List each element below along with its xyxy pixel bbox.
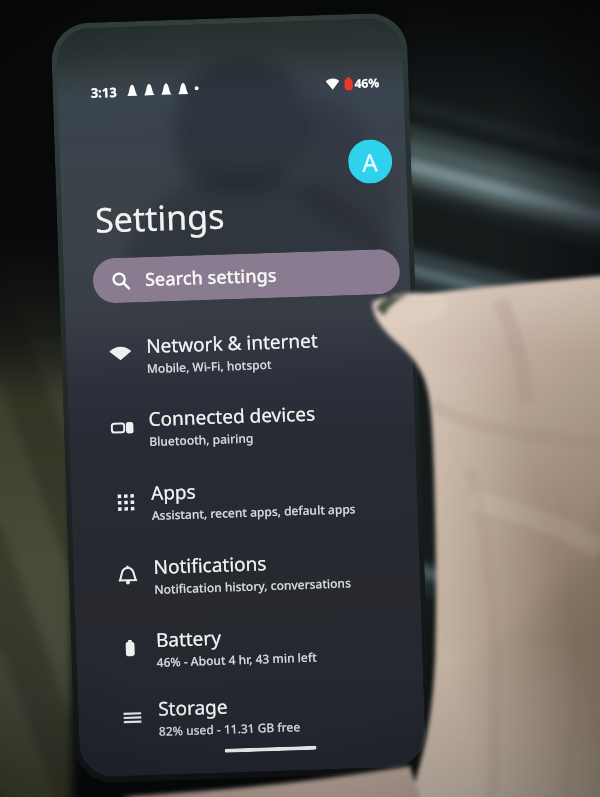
button[interactable]: Battery bbox=[75, 614, 407, 676]
staticText: Apps bbox=[151, 478, 196, 506]
button[interactable]: Network & internet bbox=[66, 320, 397, 383]
staticText: Assistant, recent apps, default apps bbox=[151, 500, 356, 523]
staticText: Network & internet bbox=[146, 327, 318, 359]
staticText: Notification history, conversations bbox=[154, 574, 351, 597]
button[interactable]: Account bbox=[347, 139, 393, 184]
staticText: Storage bbox=[158, 694, 229, 722]
staticText: Connected devices bbox=[148, 400, 316, 432]
staticText: Notifications bbox=[153, 550, 268, 580]
button[interactable]: Apps bbox=[70, 467, 402, 530]
button[interactable]: Notifications bbox=[73, 541, 404, 604]
button[interactable]: Search settings bbox=[92, 249, 401, 304]
button[interactable]: Connected devices bbox=[68, 393, 399, 456]
staticText: Mobile, Wi-Fi, hotspot bbox=[147, 356, 272, 376]
staticText: Battery bbox=[155, 625, 221, 653]
staticText: 82% used - 11.31 GB free bbox=[159, 718, 301, 739]
staticText: 46% bbox=[354, 74, 380, 91]
staticText: A bbox=[362, 145, 379, 179]
staticText: 46% - About 4 hr, 43 min left bbox=[156, 649, 318, 670]
staticText: 3:13 bbox=[90, 83, 117, 100]
staticText: Settings bbox=[94, 192, 226, 243]
staticText: Search settings bbox=[145, 263, 277, 292]
staticText: Bluetooth, pairing bbox=[149, 429, 255, 449]
button[interactable]: Storage bbox=[78, 683, 409, 745]
